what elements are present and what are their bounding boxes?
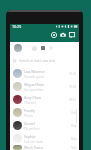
button[interactable]: Camera [60, 32, 66, 38]
button[interactable]: Channels [41, 46, 45, 50]
button[interactable]: Communities [49, 46, 53, 50]
button[interactable]: Status updates [51, 32, 57, 38]
button[interactable]: Daniel [10, 119, 79, 132]
button[interactable]: Work Team [10, 145, 79, 150]
staticText: Sounds good [24, 75, 44, 79]
button[interactable]: Sophie [10, 132, 79, 145]
button[interactable]: New chat [69, 32, 75, 38]
staticText: Yest [71, 111, 77, 115]
staticText: 10:25 [12, 24, 22, 29]
staticText: 09:12 [69, 98, 77, 102]
staticText: Photo [24, 114, 33, 118]
staticText: Miguel Ruiz [24, 82, 44, 87]
staticText: Mon [71, 137, 77, 141]
staticText: Work Team [24, 145, 43, 150]
button[interactable]: Profile [14, 44, 22, 52]
staticText: See you then [24, 88, 44, 92]
button[interactable]: Lisa Monroe [10, 67, 79, 80]
staticText: Ok perfect [24, 127, 40, 131]
button[interactable]: Family [10, 106, 79, 119]
button[interactable]: Search or start new chat [10, 59, 79, 63]
staticText: Family [24, 108, 35, 113]
staticText: Search or start new chat [19, 59, 56, 63]
staticText: Amy Chen [24, 95, 42, 100]
button[interactable]: Miguel Ruiz [10, 80, 79, 93]
staticText: 10:02 [69, 72, 77, 76]
staticText: Lisa Monroe [24, 69, 45, 74]
staticText: Daniel [24, 121, 35, 126]
button[interactable]: Amy Chen [10, 93, 79, 106]
staticText: Thanks! [24, 101, 36, 105]
staticText: Yest [71, 124, 77, 128]
staticText: 09:41 [69, 85, 77, 89]
staticText: Mon [71, 146, 77, 150]
staticText: Sophie [24, 134, 36, 139]
staticText: Call me back [24, 140, 43, 144]
button[interactable]: Status [32, 46, 37, 51]
